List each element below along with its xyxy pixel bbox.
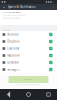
staticText: LinkedIn (7, 61, 19, 64)
staticText: display when they notify you. (2, 17, 20, 19)
button[interactable]: Dropbox (0, 38, 57, 45)
button[interactable]: Back (2, 4, 6, 10)
staticText: Tap an app to customise its behaviour (16, 84, 41, 86)
staticText: ← (3, 5, 5, 8)
staticText: System & Notification (8, 5, 36, 9)
button[interactable]: ENABLE ALL (8, 76, 48, 83)
staticText: Calendar (7, 47, 19, 50)
button[interactable]: Youtube (0, 31, 57, 38)
button[interactable]: Facebook (0, 52, 57, 59)
button[interactable]: LinkedIn (0, 59, 57, 66)
staticText: ✓ (50, 47, 52, 50)
staticText: ENABLE ALL (24, 79, 33, 80)
button[interactable]: Back (2, 89, 14, 100)
staticText: ✓ (50, 68, 52, 71)
staticText: Choose which apps can wake the (2, 14, 25, 16)
staticText: Facebook (7, 54, 19, 57)
staticText: Youtube (7, 33, 19, 36)
staticText: ✓ (50, 33, 52, 36)
staticText: Messages (7, 68, 19, 71)
button[interactable]: Recent apps (42, 89, 54, 100)
staticText: ✓ (50, 54, 52, 57)
staticText: Dropbox (7, 40, 19, 43)
button[interactable]: Home (22, 89, 34, 100)
staticText: SCREEN ON (2, 29, 10, 31)
staticText: ✓ (50, 61, 52, 64)
button[interactable]: Calendar (0, 45, 57, 52)
staticText: ✓ (50, 40, 52, 43)
button[interactable]: Messages (0, 66, 57, 73)
staticText: ⋮ (52, 5, 55, 8)
button[interactable]: More options (52, 4, 55, 10)
staticText: Screen on & notification light (2, 11, 20, 13)
staticText: 9:41 (52, 1, 55, 3)
